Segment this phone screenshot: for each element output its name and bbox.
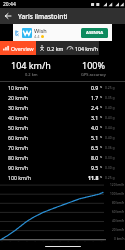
button[interactable]: 40 km/h [0,112,125,122]
staticText: 90 km/h [8,164,29,171]
staticText: 104 km/h [75,45,99,52]
staticText: 1.7 [91,94,99,101]
staticText: 50 km/h [8,124,29,131]
button[interactable]: 104 km/h [64,41,99,55]
staticText: 80 km/h [8,154,29,161]
button[interactable]: 80 km/h [0,152,125,162]
staticText: s [100,84,103,90]
staticText: 0.30 g [105,165,115,170]
staticText: 20 km/h [112,228,125,232]
staticText: 100 km/h [110,192,125,196]
staticText: 5.1 [91,134,99,141]
staticText: 0.2 km [47,45,64,52]
staticText: 0.9 [91,84,99,91]
button[interactable]: 0.2 km [36,41,64,55]
staticText: s [100,104,103,110]
staticText: ASENNA [86,30,104,36]
button[interactable]: Overview [0,41,36,55]
staticText: 10 km/h [8,84,29,91]
staticText: 0.43 g [105,115,115,120]
button[interactable]: 20 km/h [0,92,125,102]
staticText: 2.4 [91,104,99,111]
staticText: 104 km/h [11,59,51,71]
button[interactable]: 50 km/h [0,122,125,132]
staticText: GPS accuracy [81,72,106,77]
staticText: 20:44 [3,1,16,8]
staticText: 120 km/h [110,183,125,187]
button[interactable]: 10 km/h [0,82,125,92]
staticText: 0.44 g [105,125,115,130]
staticText: Overview [11,45,34,52]
staticText: 0.35 g [105,95,115,100]
staticText: 40 km/h [112,219,125,223]
staticText: 0 km/h [114,237,125,241]
staticText: 100 km/h [8,174,32,181]
button[interactable]: 90 km/h [0,162,125,172]
staticText: s [100,174,103,180]
staticText: s [100,164,103,170]
staticText: 40 km/h [8,114,29,121]
staticText: 0.25 g [105,175,115,180]
staticText: 4.0 [91,124,99,131]
staticText: s [100,134,103,140]
staticText: 6.5 [91,144,99,151]
staticText: s [100,154,103,160]
staticText: 9.5 [91,164,99,171]
staticText: s [100,94,103,100]
staticText: 0.2 km [25,72,38,77]
staticText: 0.36 g [105,145,115,150]
button[interactable]: 60 km/h [0,132,125,142]
staticText: 70 km/h [8,144,29,151]
staticText: 11.8 [88,174,99,181]
staticText: 60 km/h [112,210,125,214]
staticText: 0.40 g [105,135,115,140]
staticText: 100% [82,59,105,71]
staticText: 0.40 g [105,105,115,110]
staticText: 3.1 [91,114,99,121]
staticText: 0.25 g [105,85,115,90]
staticText: Wish [34,27,47,34]
staticText: 60 km/h [8,134,29,141]
staticText: 30 km/h [8,104,29,111]
staticText: 0.33 g [105,155,115,160]
staticText: s [100,124,103,130]
button[interactable]: 100 km/h [0,172,125,182]
staticText: s [100,144,103,150]
staticText: 4.4 [34,34,40,39]
button[interactable]: 70 km/h [0,142,125,152]
staticText: s [100,114,103,120]
button[interactable]: ASENNA [81,28,108,38]
button[interactable]: Back [0,8,16,24]
staticText: 8.0 [91,154,99,161]
staticText: 20 km/h [8,94,29,101]
staticText: 80 km/h [112,201,125,205]
staticText: Yaris ilmastointi [18,12,68,21]
button[interactable]: 30 km/h [0,102,125,112]
